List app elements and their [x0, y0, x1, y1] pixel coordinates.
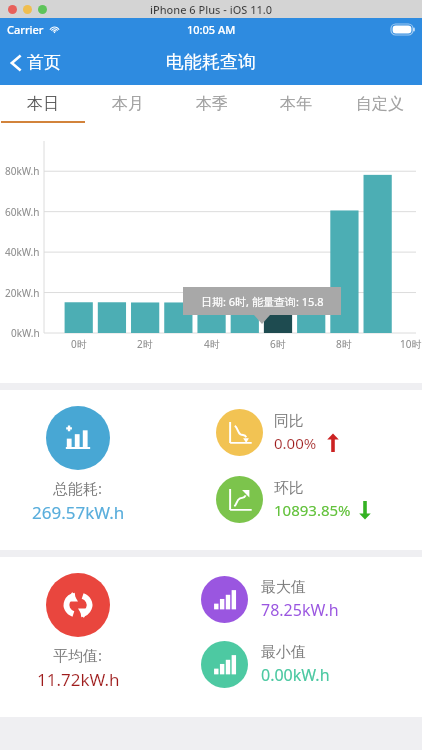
staticText: 本月 — [112, 94, 144, 114]
staticText: 环比 — [274, 479, 304, 498]
staticText: 日期: 6时, 能量查询: 15.8 — [201, 294, 324, 309]
staticText: 10893.85% — [274, 500, 351, 520]
staticText: 总能耗: — [53, 478, 103, 498]
button[interactable]: 首页 — [0, 46, 73, 79]
staticText: 平均值: — [53, 645, 103, 665]
staticText: 40kW.h — [5, 245, 40, 259]
staticText: 本年 — [280, 94, 312, 114]
staticText: 6时 — [270, 337, 286, 351]
button[interactable]: 环比 — [216, 476, 371, 523]
button[interactable]: 总能耗 — [14, 406, 142, 524]
staticText: 80kW.h — [5, 164, 40, 178]
staticText: 60kW.h — [5, 205, 40, 219]
button[interactable]: 最大值 — [201, 576, 339, 623]
staticText: 269.57kW.h — [32, 501, 125, 524]
staticText: iPhone 6 Plus - iOS 11.0 — [150, 2, 273, 17]
button[interactable]: 同比 — [216, 409, 339, 456]
staticText: 同比 — [274, 412, 304, 431]
other: 最大值 — [201, 576, 248, 623]
staticText: 0时 — [71, 337, 87, 351]
other: 总能耗 — [46, 406, 110, 470]
staticText: 10时 — [400, 337, 422, 351]
staticText: 8时 — [336, 337, 352, 351]
other: 同比 — [216, 409, 263, 456]
staticText: 10:05 AM — [187, 22, 236, 37]
staticText: 0.00kW.h — [261, 664, 330, 686]
staticText: 11.72kW.h — [37, 668, 120, 691]
staticText: 2时 — [137, 337, 153, 351]
other: 最小值 — [201, 641, 248, 688]
button[interactable]: 最小值 — [201, 641, 330, 688]
staticText: 4时 — [204, 337, 220, 351]
staticText: 最大值 — [261, 578, 306, 597]
staticText: 最小值 — [261, 643, 306, 662]
other: 平均值 — [46, 573, 110, 637]
other: 环比 — [216, 476, 263, 523]
staticText: 本日 — [27, 94, 59, 114]
button[interactable]: 平均值 — [14, 573, 142, 691]
staticText: 20kW.h — [5, 286, 40, 300]
staticText: 78.25kW.h — [261, 599, 339, 621]
staticText: 0.00% — [274, 433, 317, 453]
button[interactable]: 本月 — [85, 85, 170, 123]
button[interactable]: 本年 — [254, 85, 338, 123]
staticText: 自定义 — [356, 94, 404, 114]
button[interactable]: 本日 — [0, 85, 85, 123]
button[interactable]: 自定义 — [338, 85, 422, 123]
staticText: 本季 — [196, 94, 228, 114]
button[interactable]: 本季 — [170, 85, 254, 123]
staticText: Carrier — [7, 22, 44, 37]
staticText: 0kW.h — [11, 326, 40, 340]
staticText: 首页 — [27, 52, 61, 73]
staticText: 电能耗查询 — [166, 51, 256, 74]
